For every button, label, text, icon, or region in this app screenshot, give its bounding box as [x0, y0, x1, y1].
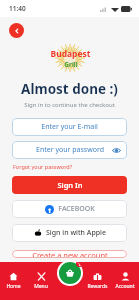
button[interactable]: FACEBOOK	[12, 200, 127, 218]
staticText: Sign In	[57, 180, 83, 190]
staticText: Menu	[34, 283, 48, 290]
staticText: Sign in with Apple	[46, 228, 106, 238]
staticText: Enter your password	[36, 145, 104, 155]
staticText: FACEBOOK	[58, 204, 95, 214]
button[interactable]: Forgot your password?	[13, 163, 73, 170]
button[interactable]: Sign in with Apple	[12, 224, 127, 242]
staticText: Budapest	[50, 48, 91, 60]
button[interactable]: Sign In	[12, 176, 127, 194]
button[interactable]: Rewards	[83, 262, 111, 300]
staticText: Account	[115, 283, 135, 290]
staticText: Rewards	[87, 283, 108, 290]
staticText: Enter your E-mail	[41, 122, 98, 132]
staticText: Grill	[64, 60, 78, 69]
staticText: Create a new account	[32, 250, 108, 258]
staticText: Home	[6, 283, 21, 290]
button[interactable]: Enter your E-mail	[12, 118, 127, 136]
staticText: Almost done :)	[0, 80, 139, 98]
staticText: 1	[78, 261, 81, 267]
staticText: 11:40	[9, 4, 26, 13]
button[interactable]: Home	[0, 262, 27, 300]
button[interactable]: Enter your password	[12, 141, 127, 159]
button[interactable]: Cart	[59, 262, 81, 284]
button[interactable]: Menu	[27, 262, 55, 300]
button[interactable]: Account	[111, 262, 139, 300]
button[interactable]: Show password	[111, 145, 121, 155]
button[interactable]: Back	[9, 23, 24, 38]
staticText: Sign in to continue the checkout	[0, 101, 139, 109]
button[interactable]: Create a new account	[12, 250, 127, 258]
